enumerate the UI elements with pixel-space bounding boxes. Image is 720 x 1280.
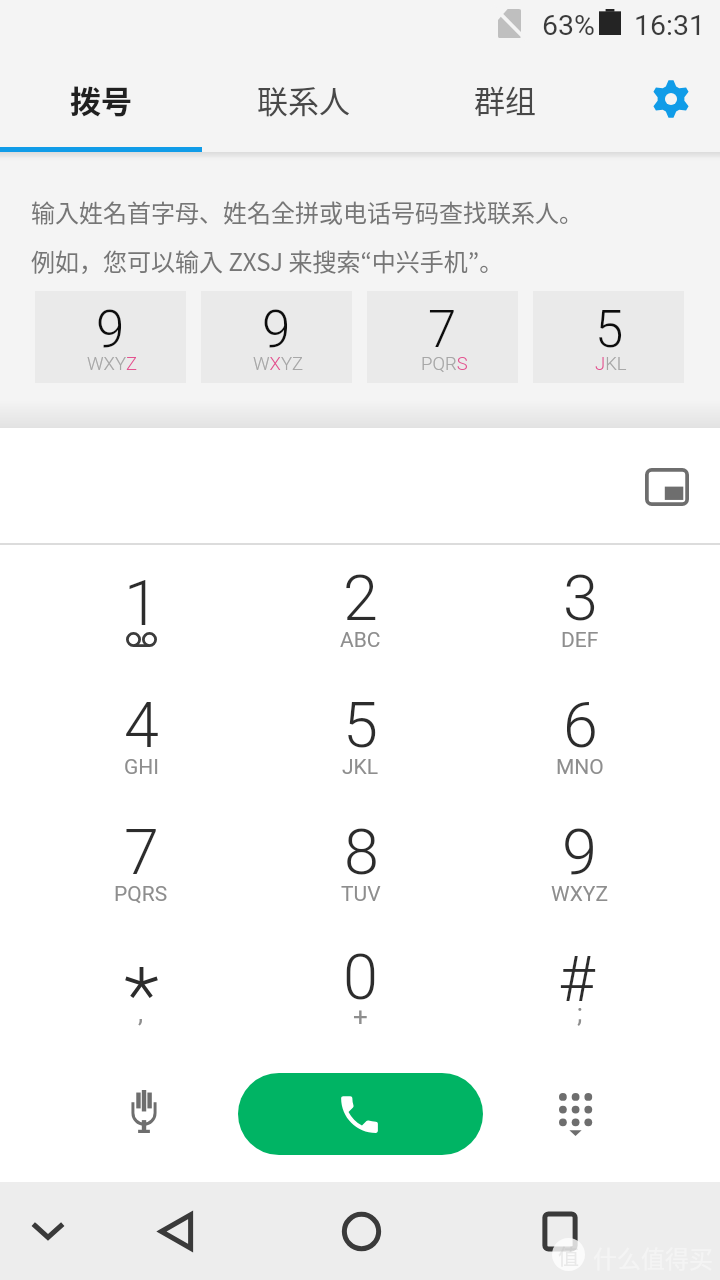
staticText: 3 <box>563 562 598 636</box>
staticText: TUV <box>341 882 381 907</box>
button[interactable]: # <box>470 929 689 1056</box>
staticText: 5 <box>595 300 624 360</box>
staticText: 4 <box>124 689 159 763</box>
staticText: 6 <box>563 689 598 763</box>
staticText: ; <box>577 998 583 1028</box>
button[interactable]: Hide keyboard <box>0 1182 96 1280</box>
staticText: 63% <box>542 9 595 42</box>
staticText: 值 <box>558 1240 579 1270</box>
staticText: # <box>558 943 595 1017</box>
button[interactable]: 5 <box>533 291 684 383</box>
button[interactable]: 9 <box>470 802 689 929</box>
staticText: WXYZ <box>253 353 304 375</box>
button[interactable]: Settings <box>606 52 720 152</box>
button[interactable]: 群组 <box>404 52 606 152</box>
staticText: 7 <box>124 816 159 890</box>
staticText: 1 <box>124 567 159 641</box>
button[interactable]: 9 <box>201 291 352 383</box>
staticText: 联系人 <box>257 77 350 122</box>
staticText: JKL <box>595 353 627 375</box>
staticText: PQRS <box>421 353 468 375</box>
button[interactable]: Recents <box>512 1182 608 1280</box>
staticText: , <box>138 998 144 1028</box>
button[interactable]: 5 <box>251 675 470 802</box>
button[interactable]: 8 <box>251 802 470 929</box>
button[interactable]: Home <box>313 1182 409 1280</box>
staticText: ABC <box>340 628 381 653</box>
staticText: GHI <box>124 755 159 780</box>
staticText: + <box>353 1002 368 1032</box>
button[interactable]: 9 <box>35 291 186 383</box>
staticText: 输入姓名首字母、姓名全拼或电话号码查找联系人。 <box>31 194 583 229</box>
button[interactable]: Call <box>238 1073 483 1155</box>
staticText: WXYZ <box>551 882 608 907</box>
button[interactable]: , <box>31 929 251 1056</box>
staticText: 9 <box>262 300 291 360</box>
staticText: 0 <box>343 941 378 1015</box>
button[interactable]: Back <box>128 1182 224 1280</box>
button[interactable]: Hide keypad <box>527 1056 623 1182</box>
staticText: 2 <box>343 562 378 636</box>
staticText: 群组 <box>474 77 536 122</box>
staticText: DEF <box>561 628 599 653</box>
button[interactable]: 7 <box>367 291 518 383</box>
staticText: PQRS <box>114 882 168 907</box>
button[interactable]: Voice dial <box>96 1056 192 1182</box>
staticText: WXYZ <box>87 353 138 375</box>
button[interactable]: 6 <box>470 675 689 802</box>
staticText: 拨号 <box>70 77 132 122</box>
button[interactable]: 联系人 <box>202 52 404 152</box>
staticText: 5 <box>343 689 378 763</box>
staticText: 7 <box>428 300 457 360</box>
button[interactable]: Picture in picture <box>638 458 696 516</box>
staticText: 9 <box>562 816 597 890</box>
staticText: 9 <box>96 300 125 360</box>
button[interactable]: 7 <box>31 802 251 929</box>
staticText: MNO <box>556 755 604 780</box>
button[interactable]: 3 <box>470 548 689 675</box>
staticText: 例如，您可以输入 ZXSJ 来搜索“中兴手机”。 <box>31 243 504 278</box>
staticText: JKL <box>342 755 379 780</box>
button[interactable]: 0 <box>251 929 470 1056</box>
button[interactable]: 1 <box>31 548 251 675</box>
button[interactable]: 拨号 <box>0 52 202 152</box>
staticText: 8 <box>344 816 379 890</box>
button[interactable]: 2 <box>251 548 470 675</box>
button[interactable]: 4 <box>31 675 251 802</box>
staticText: 16:31 <box>634 9 705 42</box>
